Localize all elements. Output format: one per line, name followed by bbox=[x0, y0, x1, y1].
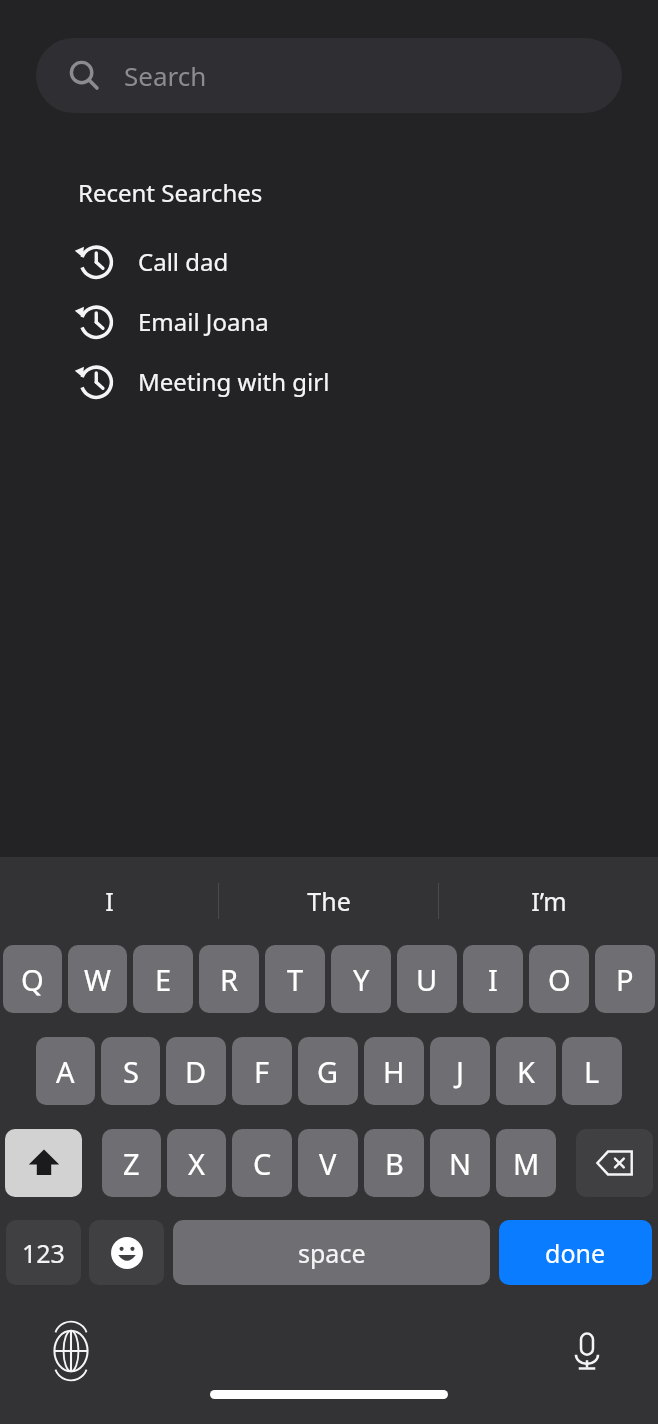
staticText: B bbox=[385, 1144, 404, 1183]
button[interactable]: I bbox=[463, 945, 523, 1013]
staticText: done bbox=[545, 1236, 606, 1270]
button[interactable]: G bbox=[298, 1037, 358, 1105]
button[interactable]: D bbox=[166, 1037, 226, 1105]
button[interactable]: H bbox=[364, 1037, 424, 1105]
button[interactable]: W bbox=[68, 945, 127, 1013]
button[interactable]: A bbox=[36, 1037, 95, 1105]
button[interactable]: J bbox=[430, 1037, 490, 1105]
button[interactable]: done bbox=[499, 1220, 652, 1285]
button[interactable]: space bbox=[173, 1220, 490, 1285]
button[interactable]: L bbox=[562, 1037, 622, 1105]
staticText: Z bbox=[123, 1144, 140, 1183]
button[interactable]: Emoji bbox=[89, 1220, 164, 1285]
button[interactable]: F bbox=[232, 1037, 292, 1105]
button[interactable]: Meeting with girl bbox=[0, 351, 658, 411]
button[interactable]: Email Joana bbox=[0, 291, 658, 351]
button[interactable]: V bbox=[298, 1129, 358, 1197]
staticText: V bbox=[319, 1144, 337, 1183]
button[interactable]: Change keyboard language bbox=[44, 1324, 98, 1378]
button[interactable]: Y bbox=[331, 945, 391, 1013]
button[interactable]: I bbox=[0, 857, 218, 945]
staticText: Call dad bbox=[138, 245, 229, 278]
button[interactable]: M bbox=[496, 1129, 556, 1197]
staticText: N bbox=[449, 1144, 472, 1183]
staticText: M bbox=[513, 1144, 540, 1183]
staticText: Q bbox=[21, 960, 44, 999]
staticText: O bbox=[548, 960, 571, 999]
staticText: Search bbox=[124, 58, 207, 93]
staticText: J bbox=[456, 1052, 464, 1091]
staticText: The bbox=[307, 884, 351, 918]
button[interactable]: 123 bbox=[6, 1220, 81, 1285]
button[interactable]: E bbox=[133, 945, 193, 1013]
staticText: Recent Searches bbox=[78, 176, 263, 209]
staticText: 123 bbox=[22, 1236, 65, 1270]
button[interactable]: K bbox=[496, 1037, 556, 1105]
staticText: X bbox=[188, 1144, 205, 1183]
button[interactable]: T bbox=[265, 945, 325, 1013]
staticText: T bbox=[287, 960, 304, 999]
staticText: Meeting with girl bbox=[138, 365, 330, 398]
button[interactable]: Search bbox=[36, 38, 622, 113]
staticText: D bbox=[185, 1052, 207, 1091]
button[interactable]: Call dad bbox=[0, 231, 658, 291]
button[interactable]: Z bbox=[102, 1129, 161, 1197]
staticText: P bbox=[616, 960, 634, 999]
button[interactable]: B bbox=[364, 1129, 424, 1197]
button[interactable]: C bbox=[232, 1129, 292, 1197]
button[interactable]: Backspace bbox=[576, 1129, 653, 1197]
button[interactable]: I’m bbox=[439, 857, 658, 945]
staticText: I’m bbox=[531, 884, 567, 918]
staticText: I bbox=[488, 960, 498, 999]
staticText: C bbox=[253, 1144, 272, 1183]
button[interactable]: U bbox=[397, 945, 457, 1013]
button[interactable]: N bbox=[430, 1129, 490, 1197]
button[interactable]: X bbox=[167, 1129, 226, 1197]
staticText: G bbox=[317, 1052, 339, 1091]
button[interactable]: Q bbox=[3, 945, 62, 1013]
staticText: L bbox=[584, 1052, 600, 1091]
staticText: H bbox=[383, 1052, 405, 1091]
button[interactable]: Shift bbox=[5, 1129, 82, 1197]
button[interactable]: O bbox=[529, 945, 589, 1013]
staticText: E bbox=[155, 960, 172, 999]
staticText: I bbox=[105, 884, 114, 918]
staticText: K bbox=[517, 1052, 535, 1091]
staticText: S bbox=[123, 1052, 139, 1091]
staticText: R bbox=[220, 960, 239, 999]
staticText: Y bbox=[353, 960, 370, 999]
staticText: Email Joana bbox=[138, 305, 269, 338]
staticText: W bbox=[84, 960, 111, 999]
button[interactable]: The bbox=[219, 857, 438, 945]
staticText: F bbox=[254, 1052, 270, 1091]
button[interactable]: S bbox=[101, 1037, 160, 1105]
staticText: A bbox=[56, 1052, 75, 1091]
staticText: space bbox=[298, 1236, 366, 1270]
button[interactable]: P bbox=[595, 945, 655, 1013]
button[interactable]: Voice input bbox=[560, 1324, 614, 1378]
button[interactable]: R bbox=[199, 945, 259, 1013]
staticText: U bbox=[416, 960, 438, 999]
